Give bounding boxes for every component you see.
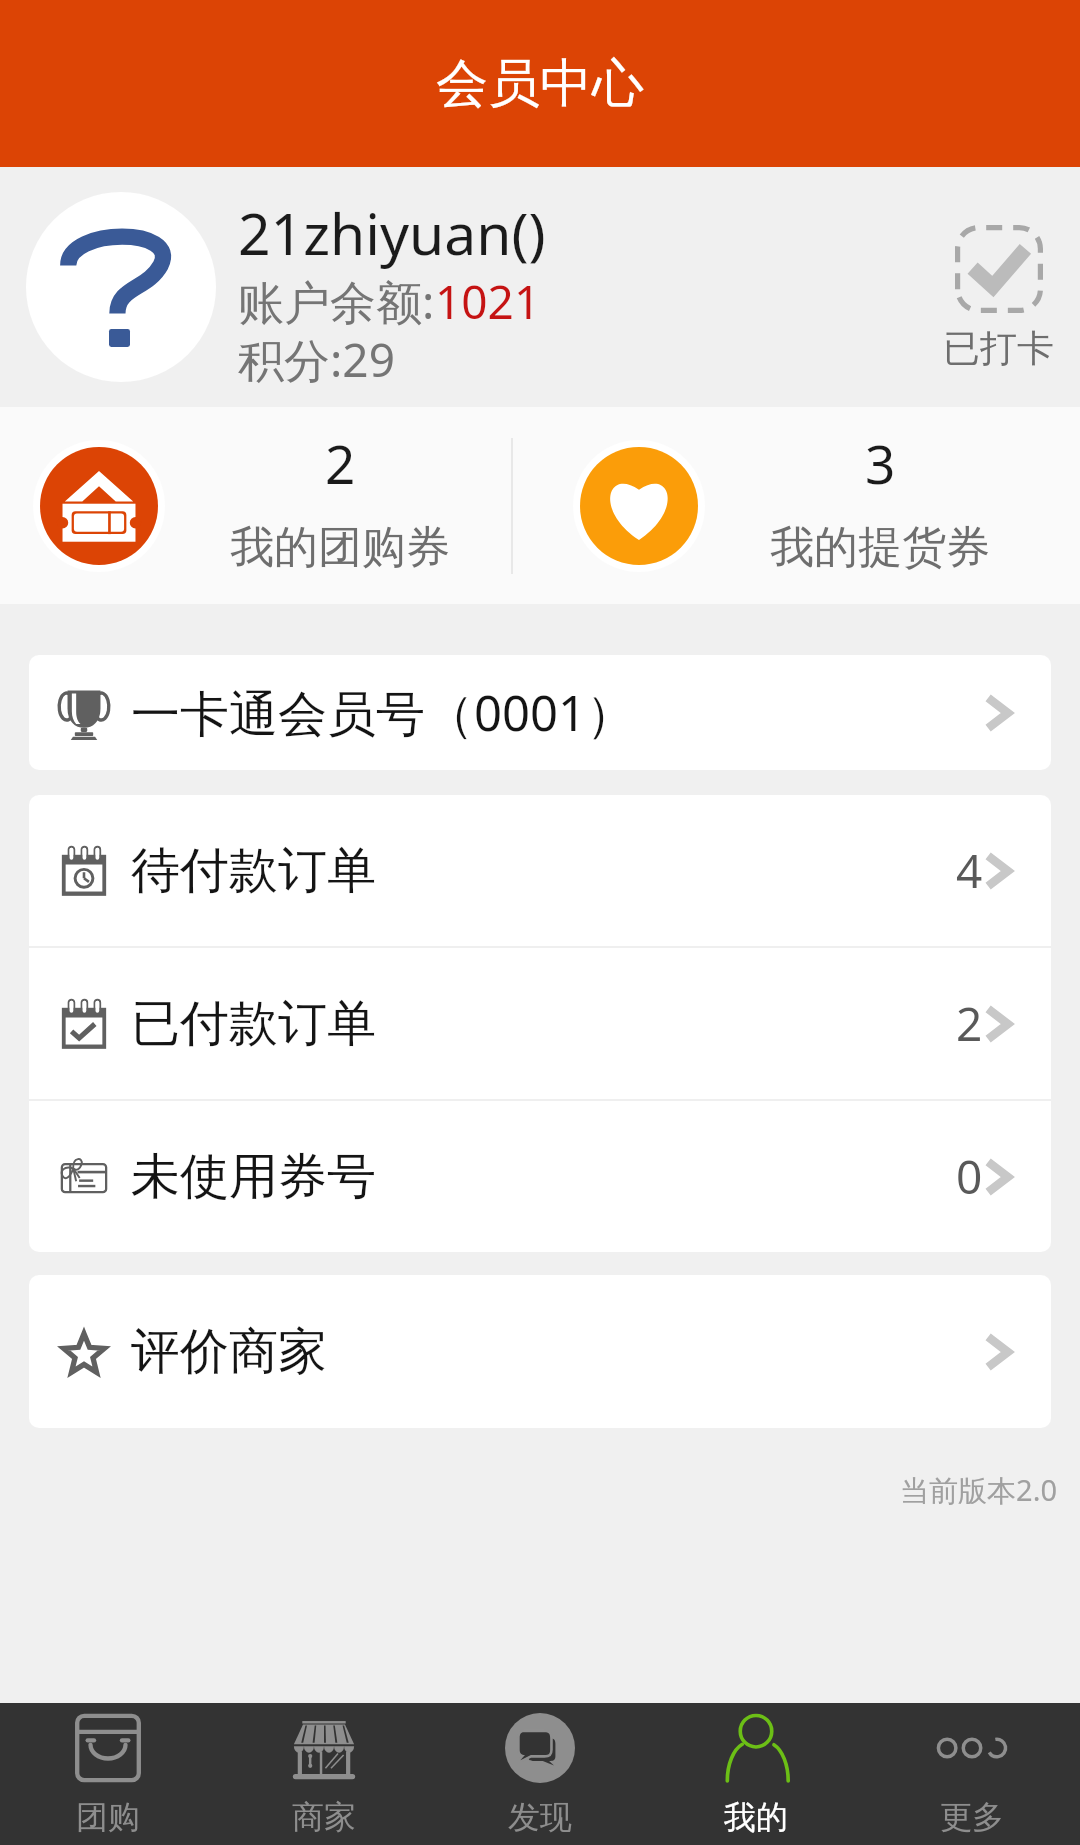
button[interactable]: 评价商家 — [29, 1275, 1051, 1428]
staticText: 4 — [956, 839, 983, 902]
button[interactable]: Avatar — [26, 192, 216, 382]
staticText: 已付款订单 — [131, 993, 376, 1055]
staticText: 待付款订单 — [131, 840, 376, 902]
staticText: 21zhiyuan() — [238, 194, 546, 272]
staticText: 发现 — [508, 1797, 572, 1837]
button[interactable]: 发现 — [432, 1703, 648, 1845]
staticText: 评价商家 — [131, 1321, 327, 1383]
button[interactable]: 3 — [540, 407, 1080, 604]
staticText: 3 — [865, 427, 896, 499]
staticText: 未使用券号 — [131, 1146, 376, 1208]
button[interactable]: Check in — [943, 203, 1054, 372]
staticText: 积分:29 — [238, 328, 395, 391]
staticText: 2 — [325, 427, 356, 499]
button[interactable]: 待付款订单 — [29, 795, 1051, 946]
button[interactable]: 我的 — [648, 1703, 864, 1845]
button[interactable]: 已付款订单 — [29, 948, 1051, 1099]
staticText: 一卡通会员号（0001） — [131, 679, 636, 746]
button[interactable]: 一卡通会员号（0001） — [29, 655, 1051, 770]
staticText: 我的团购券 — [230, 520, 450, 575]
staticText: 更多 — [940, 1797, 1004, 1837]
button[interactable]: 团购 — [0, 1703, 216, 1845]
staticText: 已打卡 — [943, 325, 1054, 372]
staticText: 账户余额: — [238, 270, 435, 333]
staticText: 2 — [956, 992, 983, 1055]
button[interactable]: 更多 — [864, 1703, 1080, 1845]
staticText: 会员中心 — [436, 51, 644, 117]
staticText: 我的 — [724, 1797, 788, 1837]
staticText: 1021 — [435, 270, 541, 333]
staticText: 0 — [956, 1145, 983, 1208]
staticText: 团购 — [76, 1797, 140, 1837]
button[interactable]: 2 — [0, 407, 540, 604]
staticText: 我的提货券 — [770, 520, 990, 575]
button[interactable]: 商家 — [216, 1703, 432, 1845]
staticText: 商家 — [292, 1797, 356, 1837]
button[interactable]: 未使用券号 — [29, 1101, 1051, 1252]
staticText: 当前版本2.0 — [0, 1470, 1057, 1510]
